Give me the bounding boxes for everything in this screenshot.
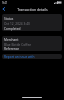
staticText: Report an issue with xyxy=(4,55,35,59)
button[interactable]: Reference xyxy=(2,47,62,51)
button[interactable]: Blue Bottle Coffee xyxy=(2,42,62,47)
staticText: Blue Bottle Coffee xyxy=(4,43,31,47)
staticText: Transaction details xyxy=(17,7,48,12)
button[interactable]: Merchant xyxy=(2,37,62,42)
staticText: Merchant xyxy=(4,38,19,42)
button[interactable]: Report an issue with xyxy=(2,54,62,59)
button[interactable]: Oct 12, 2024 3:40 xyxy=(2,21,62,26)
staticText: Oct 12, 2024 3:40 xyxy=(4,22,30,26)
staticText: 9:41 xyxy=(2,1,8,5)
button[interactable]: Completed xyxy=(2,26,62,31)
staticText: Reference xyxy=(4,47,20,51)
button[interactable]: Back xyxy=(0,5,8,13)
staticText: Status xyxy=(4,17,14,21)
staticText: Completed xyxy=(4,27,21,31)
button[interactable]: Status xyxy=(2,16,62,21)
